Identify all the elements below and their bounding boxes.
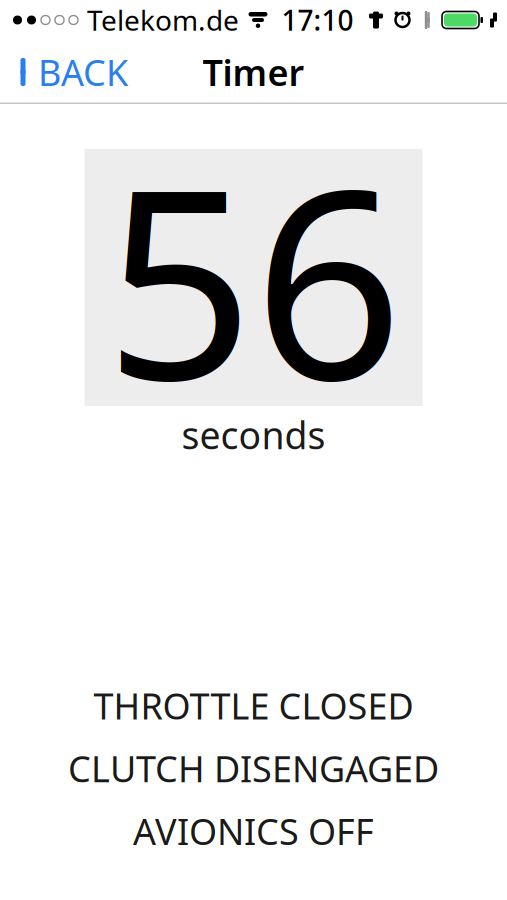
staticText: AVIONICS OFF: [133, 807, 374, 855]
staticText: Telekom.de: [87, 1, 239, 39]
staticText: 17:10: [281, 1, 353, 39]
staticText: 56: [104, 104, 402, 451]
staticText: Timer: [202, 48, 304, 96]
staticText: THROTTLE CLOSED: [93, 682, 413, 729]
staticText: BACK: [38, 48, 128, 96]
button[interactable]: BACK: [0, 40, 128, 104]
staticText: CLUTCH DISENGAGED: [68, 744, 439, 792]
staticText: seconds: [181, 410, 325, 460]
